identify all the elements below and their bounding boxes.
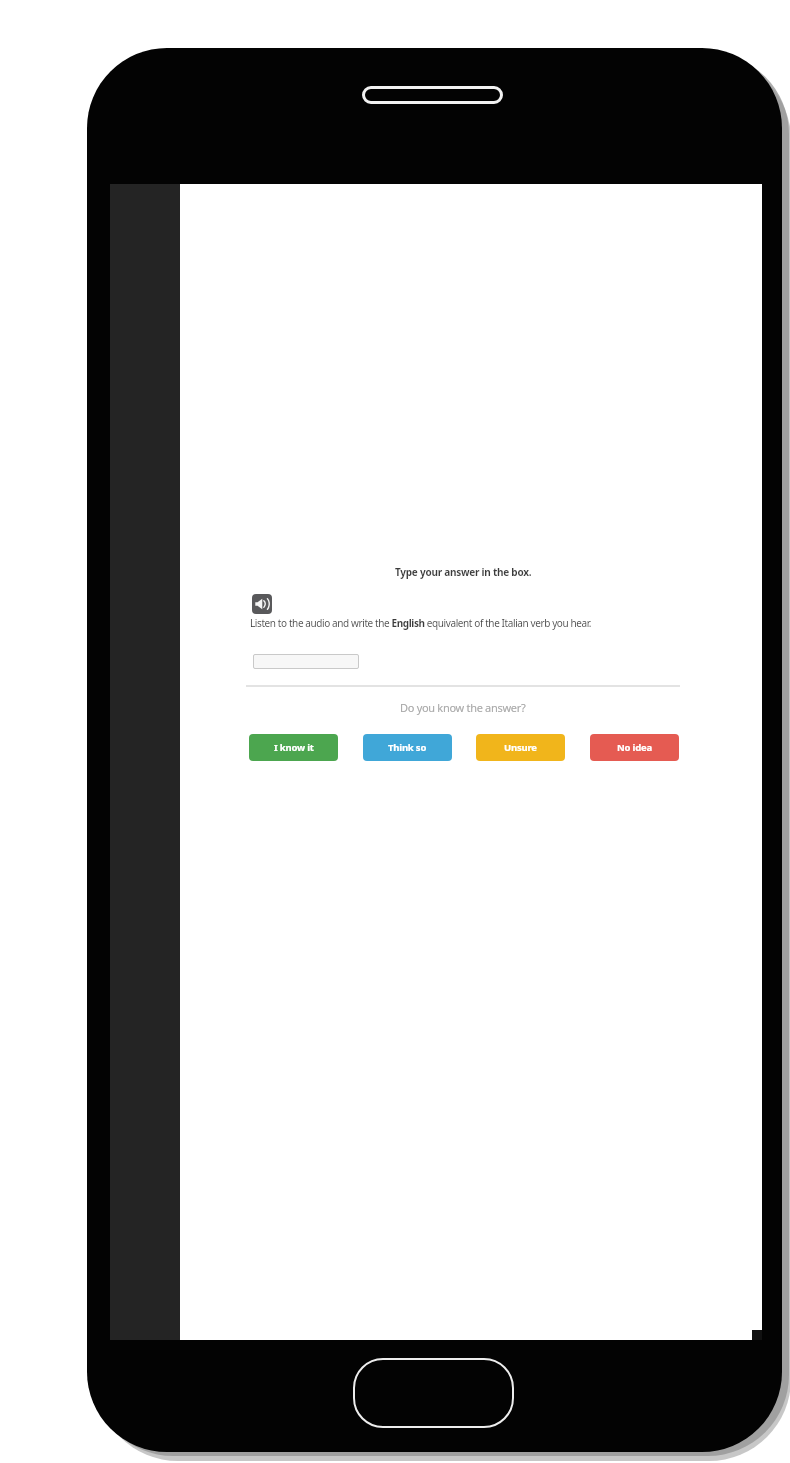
button[interactable]: Think so bbox=[363, 734, 452, 761]
staticText: No idea bbox=[617, 741, 652, 754]
button[interactable]: Unsure bbox=[476, 734, 565, 761]
button[interactable] bbox=[252, 594, 272, 614]
button[interactable] bbox=[253, 654, 359, 669]
button[interactable]: I know it bbox=[249, 734, 338, 761]
staticText: Unsure bbox=[504, 741, 537, 754]
staticText: I know it bbox=[274, 741, 314, 754]
staticText: Type your answer in the box. bbox=[395, 565, 532, 579]
staticText: Do you know the answer? bbox=[400, 700, 526, 715]
staticText: Listen to the audio and write the Englis… bbox=[250, 616, 592, 630]
button[interactable] bbox=[353, 1358, 514, 1428]
button[interactable]: No idea bbox=[590, 734, 679, 761]
staticText: Think so bbox=[388, 741, 427, 754]
